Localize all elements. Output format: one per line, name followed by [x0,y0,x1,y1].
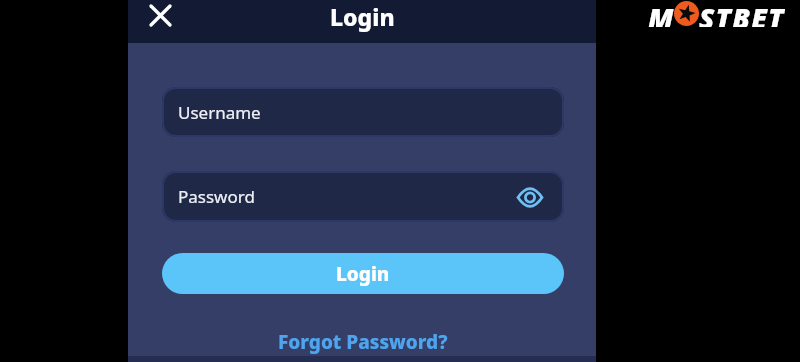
staticText: Login [336,261,390,287]
button[interactable]: M [648,0,785,27]
button[interactable] [516,183,544,211]
staticText: STBET [699,0,785,27]
staticText: Login [330,1,395,32]
button[interactable]: Username [162,87,564,137]
button[interactable] [146,1,174,29]
button[interactable]: Password [162,171,564,222]
button[interactable]: Login [162,253,564,294]
staticText: Username [178,101,261,124]
button[interactable]: Forgot Password? [278,329,448,355]
staticText: Password [178,185,255,208]
staticText: Forgot Password? [278,329,448,355]
staticText: M [648,0,674,27]
